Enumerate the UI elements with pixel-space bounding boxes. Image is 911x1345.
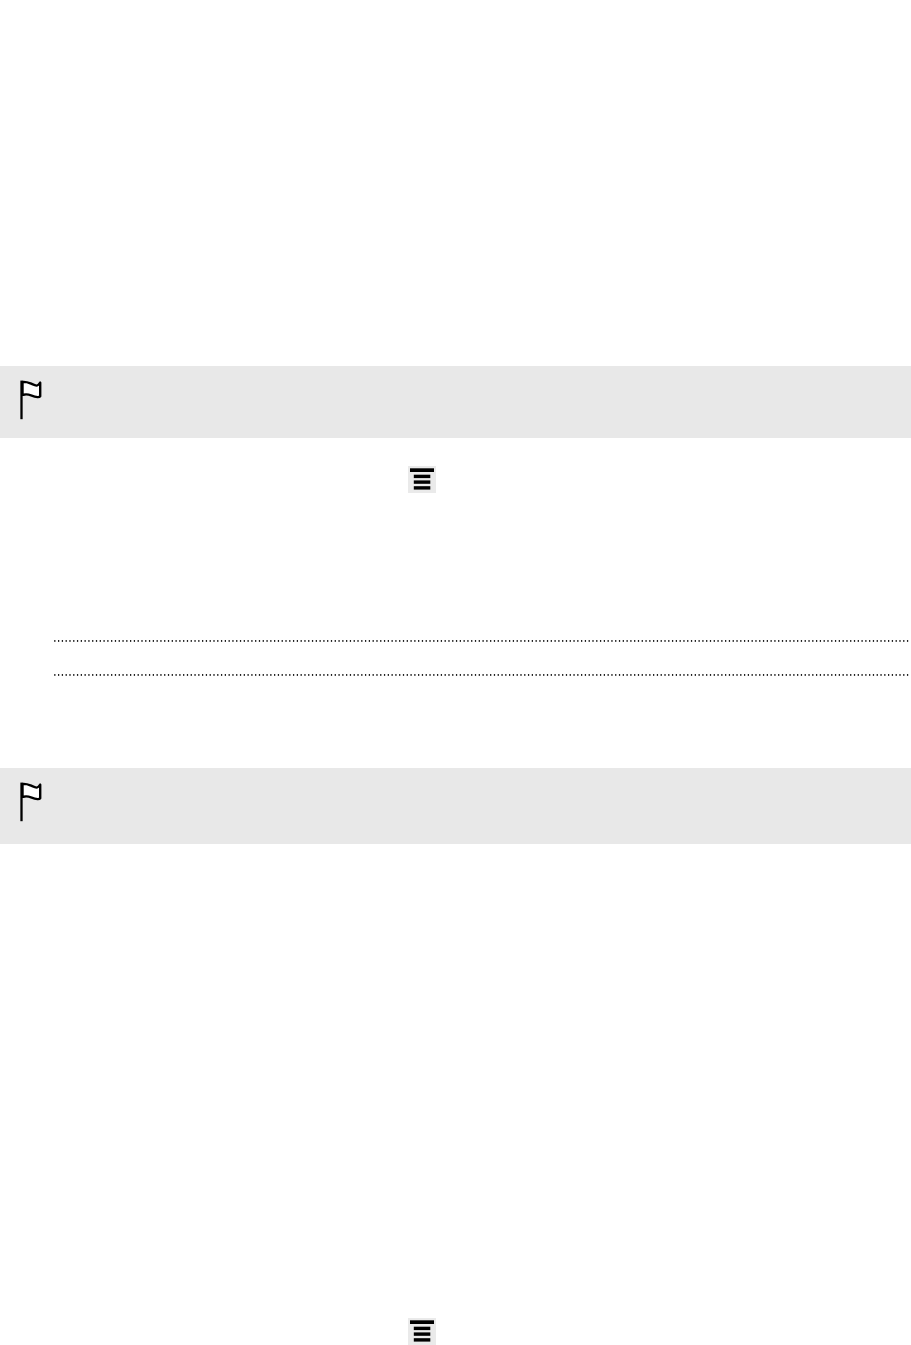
button[interactable]: Flag (0, 366, 911, 438)
button[interactable]: List options (408, 466, 436, 493)
other: Flag (20, 782, 44, 823)
other: Flag (20, 380, 44, 421)
button[interactable]: List options (408, 1318, 436, 1345)
button[interactable]: Flag (0, 768, 911, 844)
